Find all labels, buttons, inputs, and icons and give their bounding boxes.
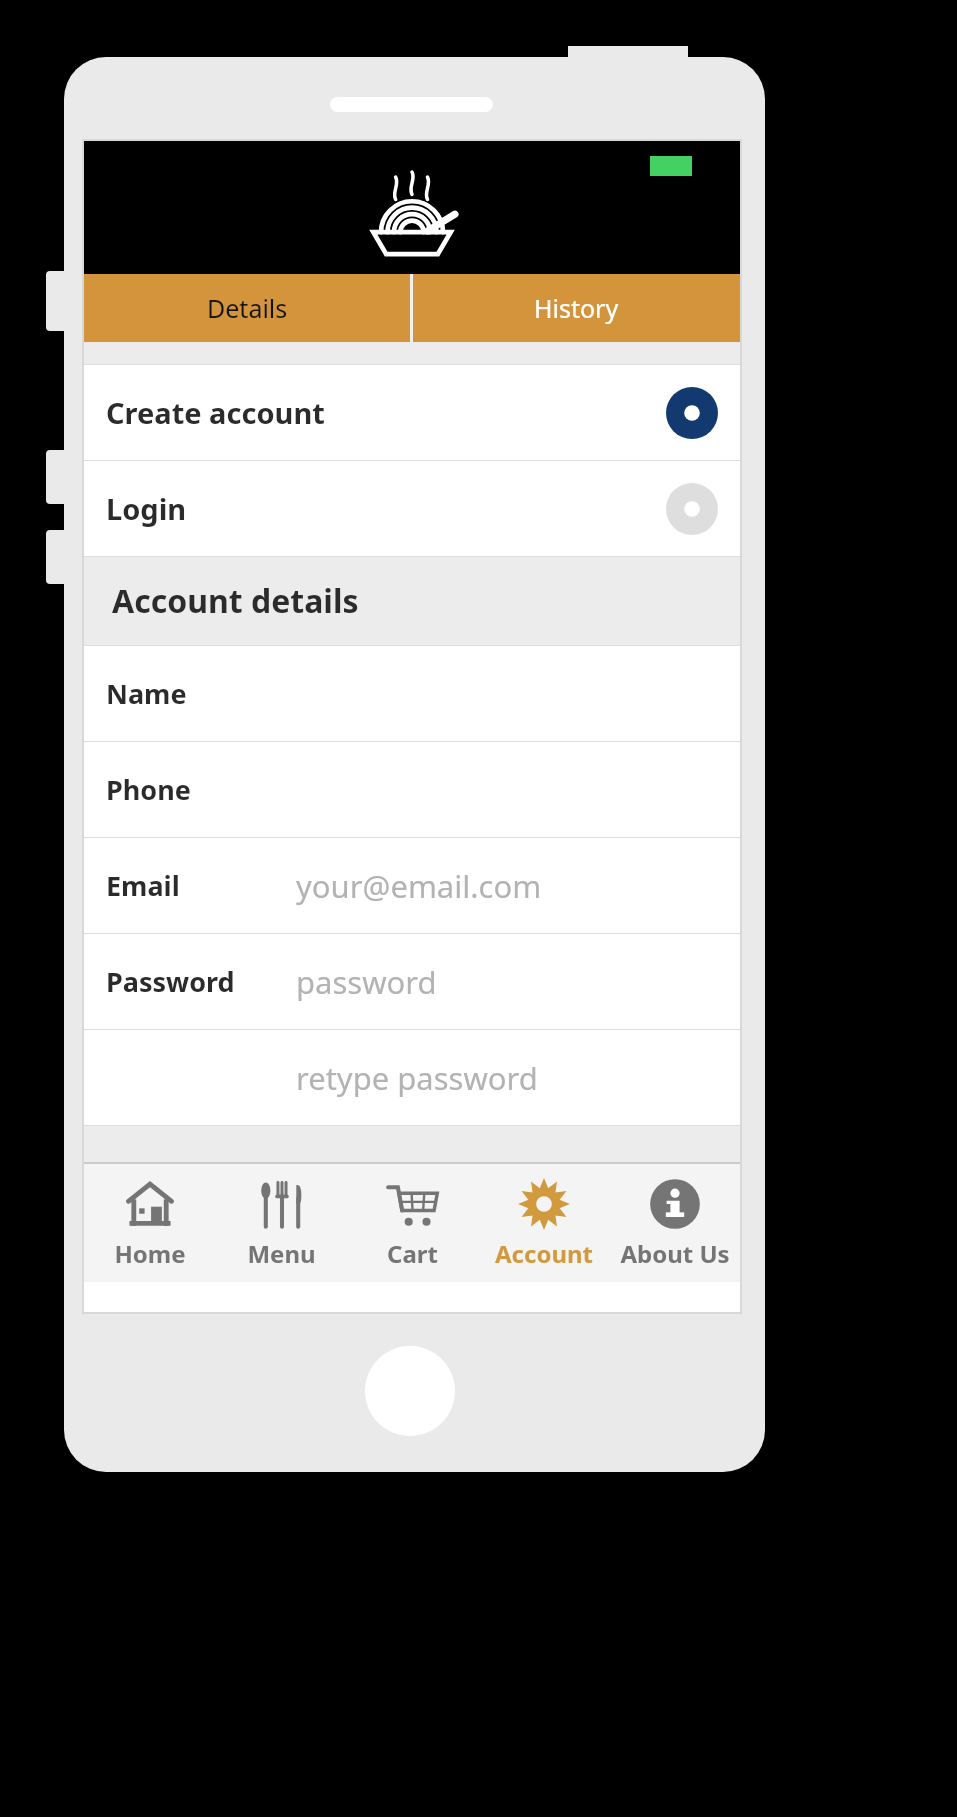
button[interactable]: Create account — [84, 365, 740, 460]
staticText: Password — [106, 963, 235, 1000]
staticText: Create account — [106, 393, 325, 432]
button[interactable]: Login — [84, 461, 740, 556]
button[interactable]: Password — [84, 934, 740, 1029]
button[interactable]: About Us — [609, 1164, 740, 1282]
staticText: retype password — [296, 1057, 538, 1099]
staticText: Details — [207, 291, 288, 325]
button[interactable]: Name — [84, 646, 740, 741]
staticText: Cart — [387, 1237, 438, 1270]
button[interactable]: Menu — [216, 1164, 347, 1282]
button[interactable]: Cart — [347, 1164, 478, 1282]
button[interactable]: Email — [84, 838, 740, 933]
staticText: Phone — [106, 771, 191, 808]
staticText: Account — [495, 1237, 593, 1270]
button[interactable]: Home — [84, 1164, 216, 1282]
staticText: Account details — [112, 579, 359, 623]
button[interactable]: Phone — [84, 742, 740, 837]
staticText: Login — [106, 489, 187, 528]
staticText: Menu — [247, 1237, 316, 1270]
staticText: password — [296, 961, 437, 1003]
button[interactable]: Details — [84, 274, 410, 342]
staticText: your@email.com — [296, 865, 542, 907]
staticText: History — [534, 291, 619, 325]
staticText: Name — [106, 675, 187, 712]
staticText: Home — [114, 1237, 186, 1270]
staticText: Email — [106, 867, 180, 904]
button[interactable]: History — [413, 274, 740, 342]
button[interactable]: Account — [478, 1164, 609, 1282]
staticText: About Us — [620, 1237, 730, 1270]
button[interactable]: retype password — [84, 1030, 740, 1125]
